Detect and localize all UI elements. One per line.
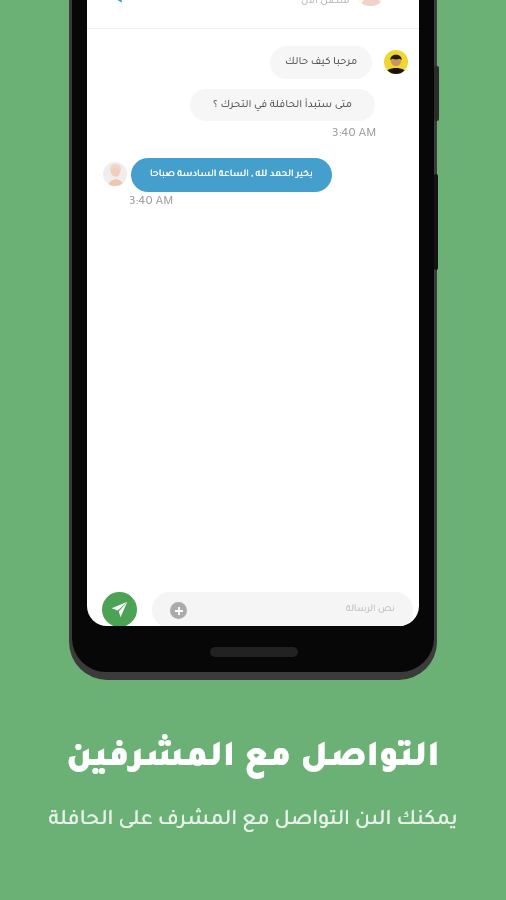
staticText: 3:40 AM: [129, 196, 174, 209]
staticText: نص الرسالة: [346, 605, 395, 615]
staticText: بخير الحمد لله , الساعة السادسة صباحا: [150, 170, 313, 180]
button[interactable]: Add attachment: [170, 602, 187, 619]
staticText: متى ستبدأ الحافلة في التحرك ؟: [213, 100, 353, 111]
button[interactable]: متى ستبدأ الحافلة في التحرك ؟: [190, 89, 375, 121]
staticText: متصل الآن: [301, 0, 350, 7]
button[interactable]: بخير الحمد لله , الساعة السادسة صباحا: [131, 158, 332, 192]
staticText: مرحبا كيف حالك: [285, 57, 358, 68]
button[interactable]: Send message: [102, 592, 137, 626]
button[interactable]: مرحبا كيف حالك: [270, 46, 372, 79]
staticText: التواصل مع المشرفين: [0, 742, 506, 778]
staticText: 3:40 AM: [332, 128, 377, 141]
button[interactable]: نص الرسالة: [152, 592, 413, 626]
staticText: يمكنك الىن التواصل مع المشرف على الحافلة: [0, 810, 506, 832]
